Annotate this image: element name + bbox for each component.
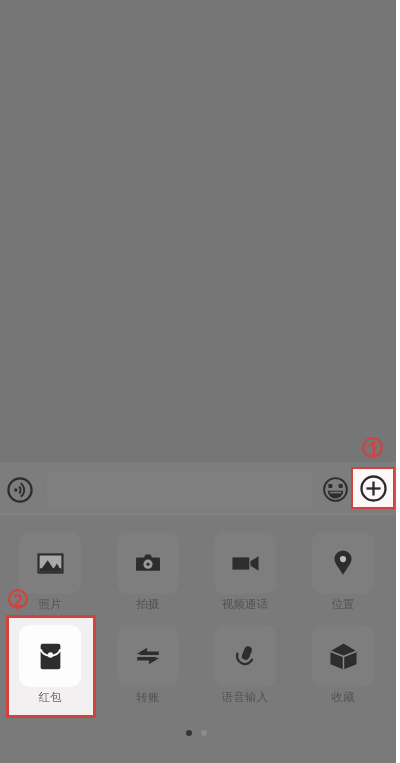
button[interactable]: 转账 [117,625,179,704]
staticText: 收藏 [312,690,374,704]
button[interactable]: 位置 [312,532,374,611]
button[interactable]: 收藏 [312,625,374,704]
button[interactable]: Emoji [323,477,348,502]
staticText: 语音输入 [214,690,276,704]
button[interactable]: 视频通话 [214,532,276,611]
staticText: 照片 [19,597,81,611]
staticText: 位置 [312,597,374,611]
button[interactable]: 语音输入 [214,625,276,704]
staticText: 红包 [19,690,81,704]
button[interactable]: 拍摄 [117,532,179,611]
button[interactable]: 照片 [19,532,81,611]
staticText: 1 [368,437,378,458]
staticText: 2 [13,589,23,609]
staticText: 视频通话 [214,597,276,611]
button[interactable]: Switch to voice input [7,477,33,503]
staticText: 转账 [117,690,179,704]
button[interactable]: 红包 [19,625,81,704]
staticText: 拍摄 [117,597,179,611]
button[interactable]: More functions [351,467,395,509]
